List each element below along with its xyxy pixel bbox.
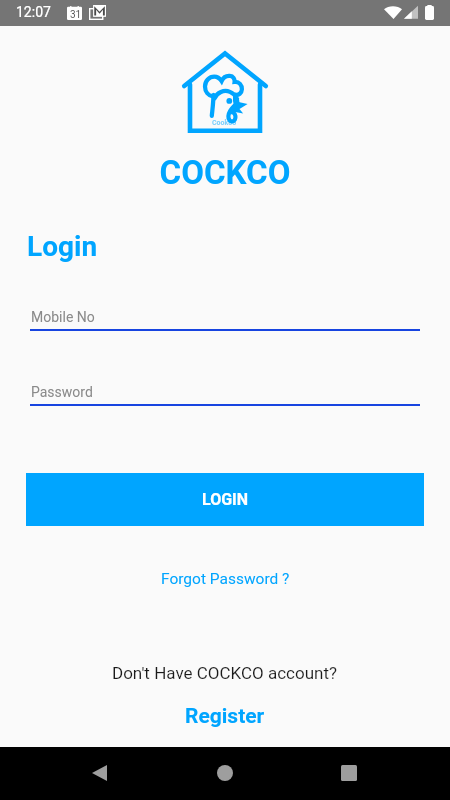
staticText: Password: [31, 384, 93, 400]
button[interactable]: Register: [179, 702, 271, 731]
staticText: 31: [70, 9, 82, 21]
staticText: Mobile No: [31, 309, 95, 325]
staticText: Cookoo: [212, 119, 237, 127]
button[interactable]: Back: [75, 749, 123, 797]
staticText: Login: [27, 230, 98, 263]
button[interactable]: Forgot Password ?: [157, 568, 294, 590]
staticText: 12:07: [16, 4, 51, 20]
staticText: COCKCO: [0, 153, 450, 192]
button[interactable]: Home: [201, 749, 249, 797]
staticText: Don't Have COCKCO account?: [112, 663, 338, 683]
button[interactable]: LOGIN: [26, 473, 424, 526]
staticText: LOGIN: [202, 490, 249, 509]
button[interactable]: Recent apps: [325, 749, 373, 797]
